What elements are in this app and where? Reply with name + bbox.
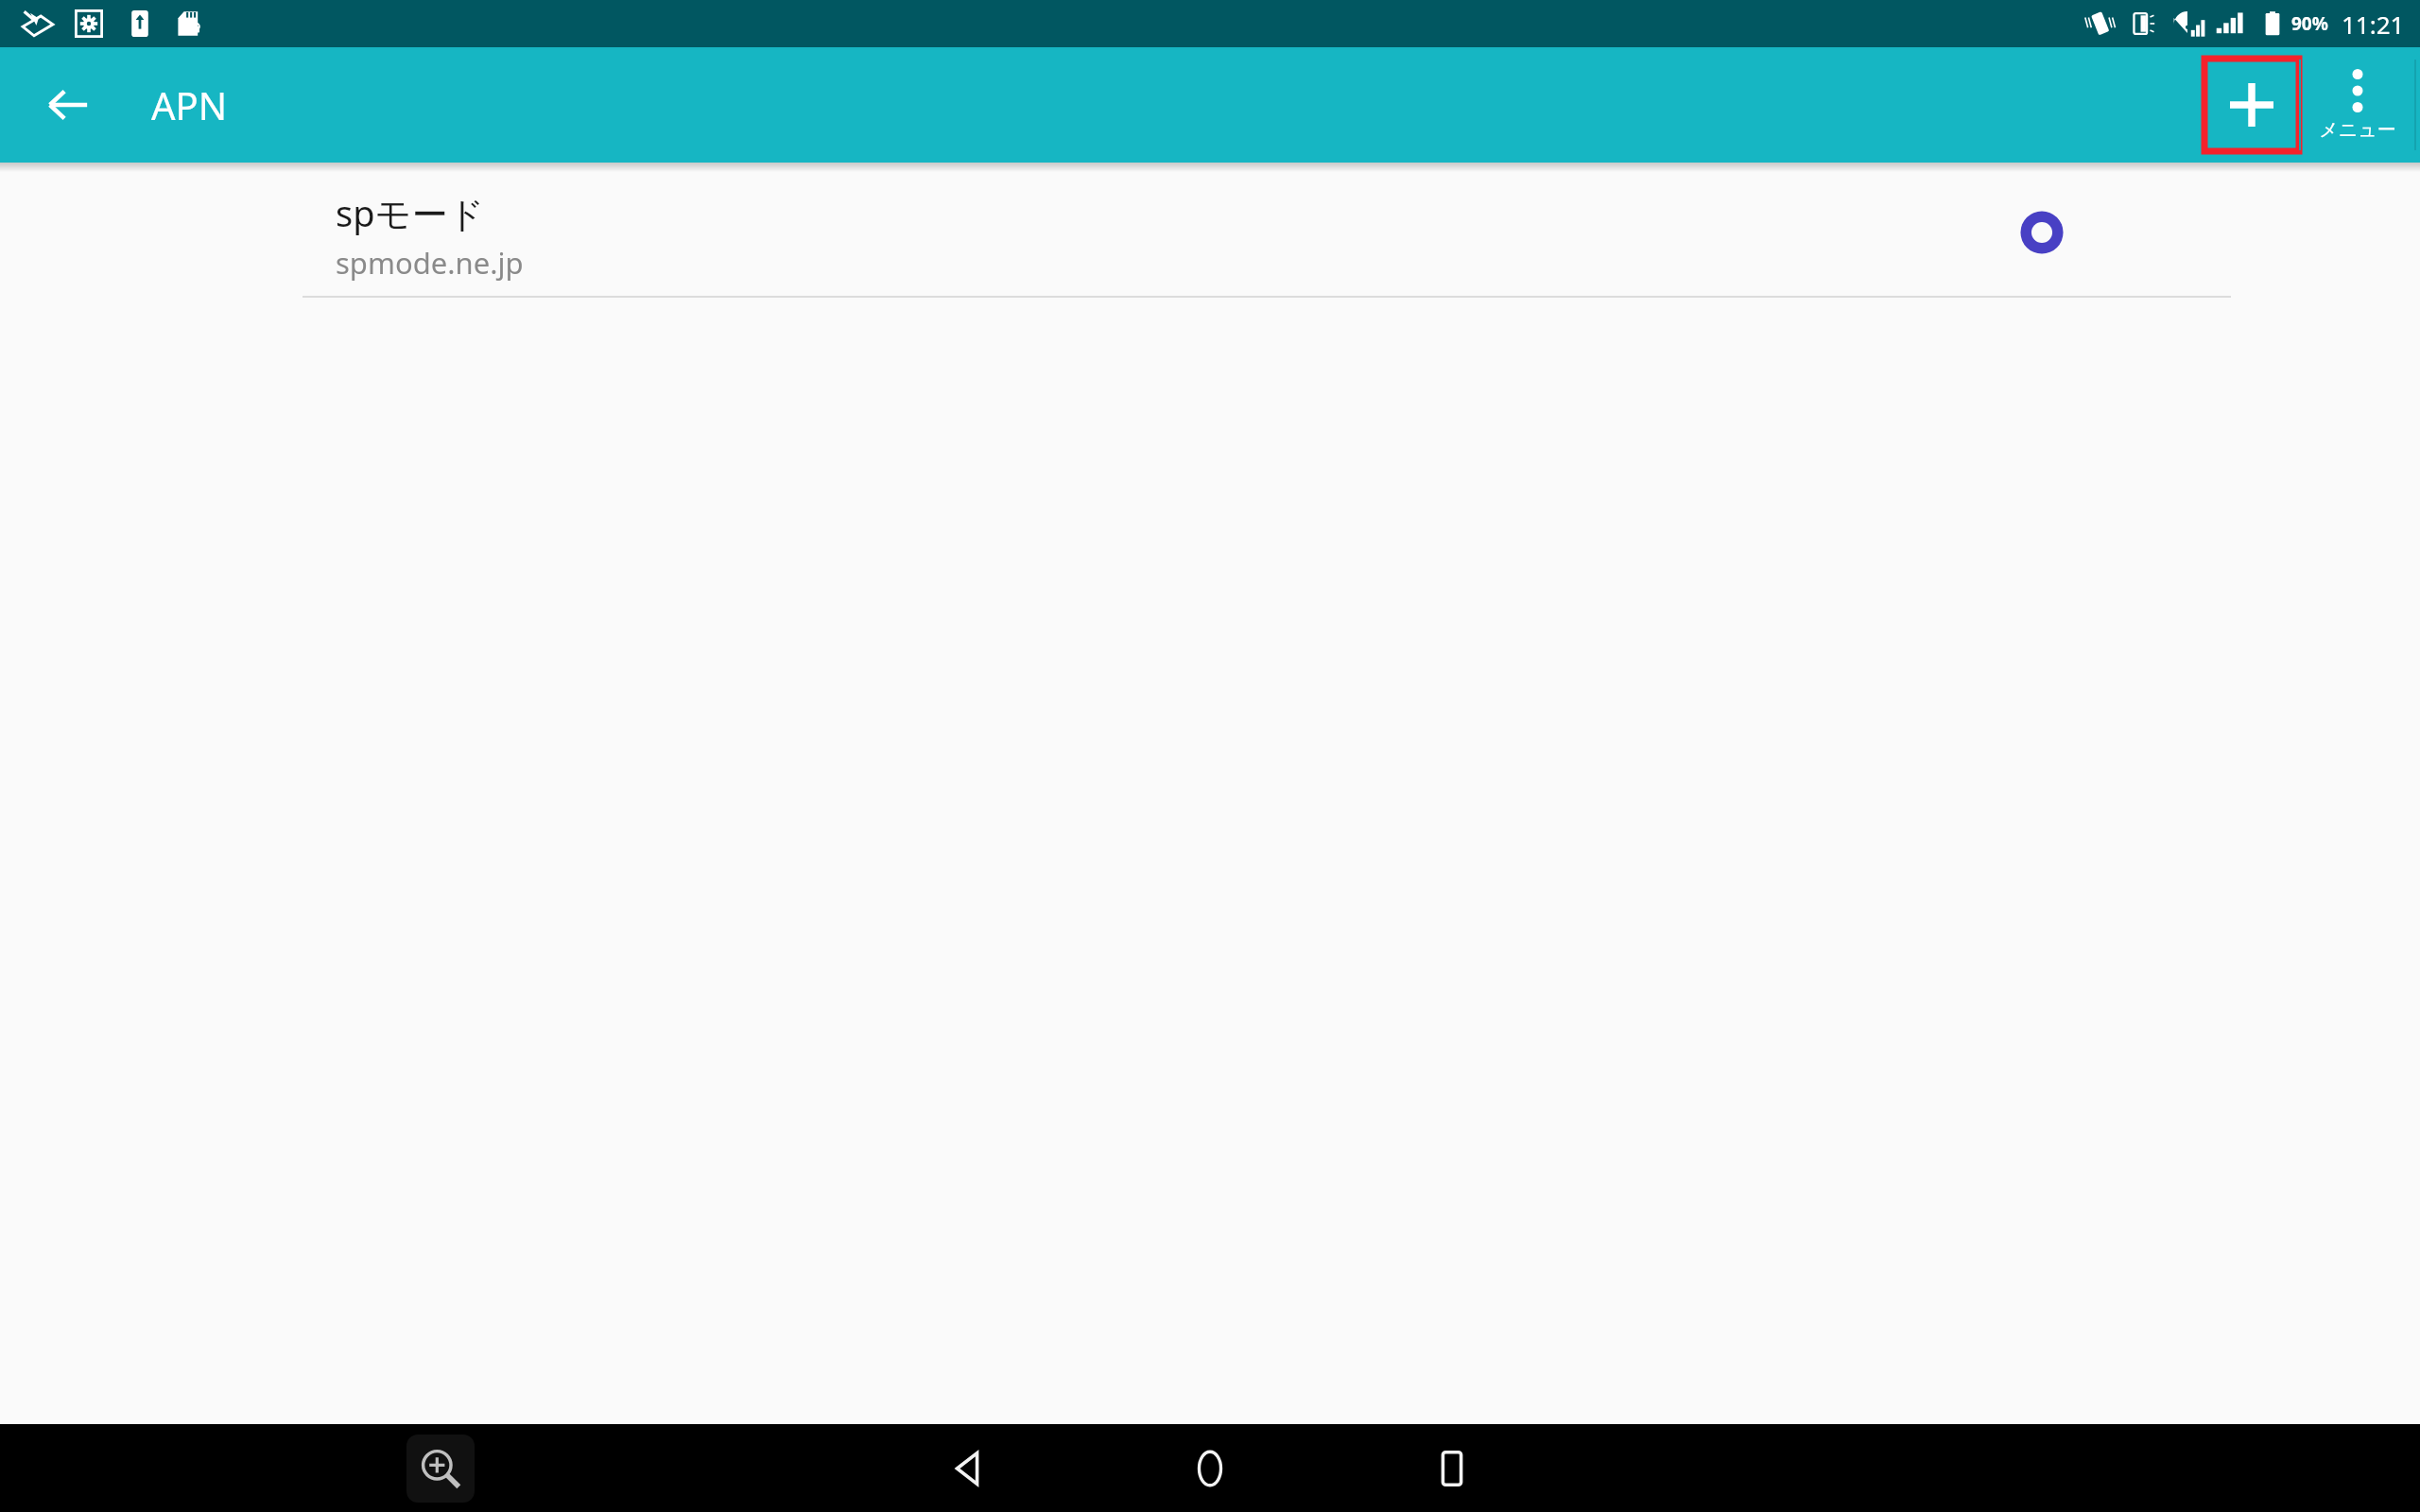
staticText: 11:21 — [2342, 8, 2405, 41]
button[interactable]: spモード — [0, 172, 2420, 298]
button[interactable]: More options menu — [2301, 53, 2414, 157]
staticText: メニュー — [2319, 118, 2396, 142]
staticText: spモード — [336, 188, 485, 237]
staticText: APN — [151, 79, 228, 130]
staticText: spmode.ne.jp — [336, 243, 524, 283]
button[interactable]: Back — [907, 1424, 1029, 1512]
button[interactable]: Home — [1149, 1424, 1271, 1512]
button[interactable]: Back — [26, 63, 110, 146]
button[interactable]: Recent apps — [1391, 1424, 1513, 1512]
button[interactable]: Add APN — [2204, 59, 2299, 151]
button[interactable]: Select spモード APN — [1998, 189, 2085, 276]
button[interactable]: Magnify screen — [406, 1435, 475, 1503]
staticText: 90% — [2291, 11, 2328, 36]
